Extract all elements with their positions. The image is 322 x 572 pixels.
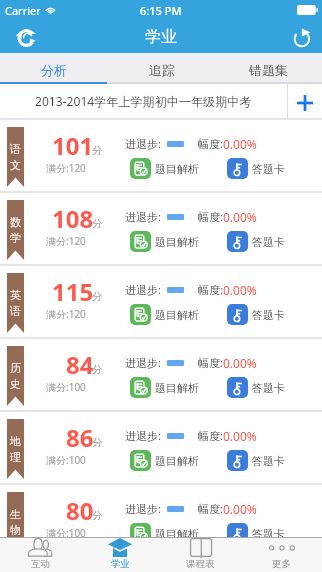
staticText: 0.00%	[223, 209, 257, 225]
button[interactable]: 答题卡	[227, 377, 285, 398]
button[interactable]: 答题卡	[227, 304, 285, 325]
button[interactable]: 答题卡	[227, 523, 285, 544]
button[interactable]: 题目解析	[130, 377, 199, 398]
button[interactable]: 历	[0, 339, 322, 410]
staticText: 进退步:	[125, 501, 161, 516]
staticText: 题目解析	[155, 527, 199, 541]
button[interactable]: 题目解析	[130, 450, 199, 471]
staticText: 学业	[145, 27, 177, 47]
staticText: 历	[10, 361, 21, 375]
staticText: 答题卡	[252, 454, 285, 468]
staticText: 题目解析	[155, 235, 199, 249]
button[interactable]: 答题卡	[227, 158, 285, 179]
staticText: 0.00%	[223, 136, 257, 152]
staticText: 6:15 PM	[140, 3, 182, 18]
button[interactable]: 追踪	[108, 53, 215, 82]
staticText: 0.00%	[223, 428, 257, 444]
staticText: 进退步:	[125, 428, 161, 443]
staticText: 满分:100	[46, 526, 86, 540]
staticText: 进退步:	[125, 209, 161, 224]
staticText: 英	[10, 288, 21, 302]
staticText: 课程表	[186, 558, 215, 570]
staticText: 语	[10, 142, 21, 156]
staticText: 题目解析	[155, 381, 199, 395]
staticText: 84	[66, 348, 94, 381]
staticText: 幅度:	[198, 209, 223, 224]
staticText: 学业	[111, 558, 130, 570]
staticText: 数	[10, 215, 21, 229]
staticText: 理	[10, 450, 21, 464]
staticText: 物	[10, 523, 21, 537]
staticText: Carrier	[5, 3, 41, 18]
button[interactable]: Refresh	[292, 26, 313, 47]
button[interactable]: 英	[0, 266, 322, 337]
button[interactable]: 地	[0, 412, 322, 483]
staticText: 满分:120	[46, 234, 86, 248]
staticText: 幅度:	[198, 428, 223, 443]
button[interactable]: 题目解析	[130, 523, 199, 544]
button[interactable]: 课程表	[160, 538, 241, 572]
button[interactable]: 题目解析	[130, 158, 199, 179]
button[interactable]: 2013-2014学年上学期初中一年级期中考	[0, 84, 287, 118]
button[interactable]: Add exam	[288, 84, 322, 118]
staticText: 分	[92, 436, 103, 449]
staticText: 文	[10, 158, 21, 172]
staticText: 进退步:	[125, 282, 161, 297]
button[interactable]: 答题卡	[227, 231, 285, 252]
staticText: 题目解析	[155, 308, 199, 322]
staticText: 分	[92, 363, 103, 376]
staticText: 错题集	[249, 62, 288, 78]
staticText: 满分:100	[46, 380, 86, 394]
button[interactable]: 分析	[0, 53, 108, 82]
staticText: 追踪	[149, 62, 175, 78]
button[interactable]: 错题集	[215, 53, 322, 82]
staticText: 题目解析	[155, 162, 199, 176]
staticText: 史	[10, 377, 21, 391]
staticText: 生	[10, 507, 21, 521]
staticText: 分	[92, 144, 103, 157]
staticText: 分	[92, 509, 103, 522]
staticText: 进退步:	[125, 355, 161, 370]
staticText: 108	[52, 202, 94, 235]
staticText: 互动	[31, 558, 50, 570]
button[interactable]: 题目解析	[130, 231, 199, 252]
staticText: 0.00%	[223, 282, 257, 298]
staticText: 80	[66, 494, 94, 527]
staticText: 分析	[41, 62, 67, 78]
staticText: 分	[92, 290, 103, 303]
button[interactable]: 语	[0, 120, 322, 191]
button[interactable]: 生	[0, 485, 322, 556]
button[interactable]: 互动	[0, 538, 80, 572]
staticText: 0.00%	[223, 355, 257, 371]
staticText: 答题卡	[252, 381, 285, 395]
staticText: 幅度:	[198, 355, 223, 370]
staticText: 101	[52, 129, 94, 162]
staticText: 86	[66, 421, 94, 454]
staticText: 满分:120	[46, 161, 86, 175]
staticText: 0.00%	[223, 501, 257, 517]
staticText: 幅度:	[198, 282, 223, 297]
staticText: 地	[10, 434, 21, 448]
button[interactable]: 题目解析	[130, 304, 199, 325]
staticText: 题目解析	[155, 454, 199, 468]
staticText: 115	[52, 275, 94, 308]
staticText: 幅度:	[198, 501, 223, 516]
staticText: 答题卡	[252, 308, 285, 322]
button[interactable]: 学业	[80, 538, 160, 572]
staticText: 满分:120	[46, 307, 86, 321]
staticText: 语	[10, 304, 21, 318]
button[interactable]: 数	[0, 193, 322, 264]
button[interactable]: 更多	[241, 538, 322, 572]
staticText: 进退步:	[125, 136, 161, 151]
button[interactable]: 答题卡	[227, 450, 285, 471]
staticText: 学	[10, 231, 21, 245]
staticText: 分	[92, 217, 103, 230]
staticText: 答题卡	[252, 527, 285, 541]
staticText: 满分:100	[46, 453, 86, 467]
staticText: 更多	[272, 558, 291, 570]
staticText: 答题卡	[252, 235, 285, 249]
staticText: 答题卡	[252, 162, 285, 176]
button[interactable]: Home logo	[16, 27, 36, 47]
staticText: 2013-2014学年上学期初中一年级期中考	[35, 93, 252, 110]
staticText: 幅度:	[198, 136, 223, 151]
